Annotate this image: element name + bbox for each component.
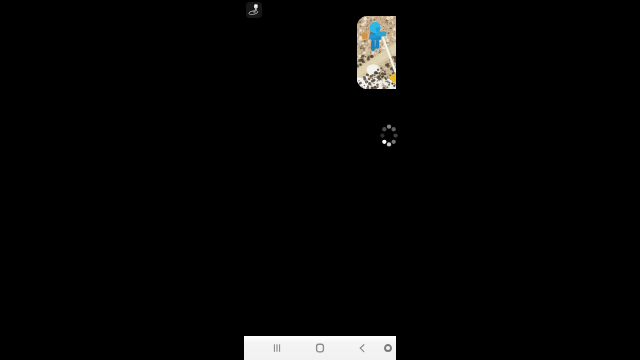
button[interactable]: Hide keyboard bbox=[377, 336, 399, 360]
button[interactable]: Photo bbox=[357, 16, 396, 89]
button[interactable]: Back bbox=[351, 336, 373, 360]
button[interactable]: Recents bbox=[266, 336, 288, 360]
button[interactable]: Account bbox=[246, 2, 262, 18]
button[interactable]: Home bbox=[309, 336, 331, 360]
